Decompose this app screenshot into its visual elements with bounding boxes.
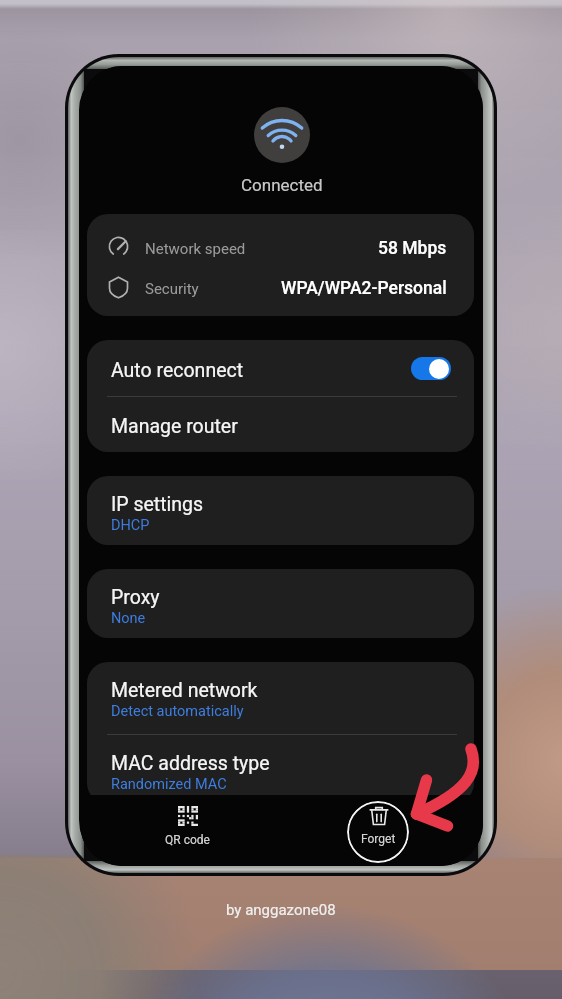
- staticText: Auto reconnect: [111, 359, 244, 382]
- staticText: DHCP: [111, 517, 150, 534]
- staticText: 58 Mbps: [378, 238, 447, 259]
- button[interactable]: Metered network: [87, 662, 474, 731]
- staticText: MAC address type: [111, 752, 270, 775]
- button[interactable]: MAC address type: [87, 735, 474, 804]
- staticText: Connected: [241, 175, 323, 195]
- button[interactable]: Auto reconnect toggle: [411, 357, 451, 380]
- staticText: WPA/WPA2-Personal: [281, 278, 447, 299]
- button[interactable]: Proxy: [87, 569, 474, 638]
- staticText: Manage router: [111, 415, 238, 438]
- staticText: Detect automatically: [111, 703, 244, 720]
- button[interactable]: Forget: [347, 801, 409, 863]
- staticText: QR code: [165, 833, 210, 847]
- staticText: None: [111, 610, 146, 627]
- button[interactable]: Manage router: [87, 397, 474, 452]
- button[interactable]: QR code: [139, 806, 236, 847]
- staticText: IP settings: [111, 493, 204, 516]
- staticText: Randomized MAC: [111, 776, 227, 793]
- button[interactable]: Auto reconnect: [87, 340, 474, 396]
- staticText: Metered network: [111, 679, 258, 702]
- button[interactable]: IP settings: [87, 476, 474, 545]
- button[interactable]: Security: [87, 265, 474, 305]
- button[interactable]: Network speed: [87, 225, 474, 265]
- staticText: Network speed: [145, 240, 246, 258]
- staticText: Security: [145, 280, 199, 298]
- staticText: Forget: [361, 832, 396, 846]
- staticText: Proxy: [111, 586, 160, 609]
- staticText: by anggazone08: [226, 901, 336, 919]
